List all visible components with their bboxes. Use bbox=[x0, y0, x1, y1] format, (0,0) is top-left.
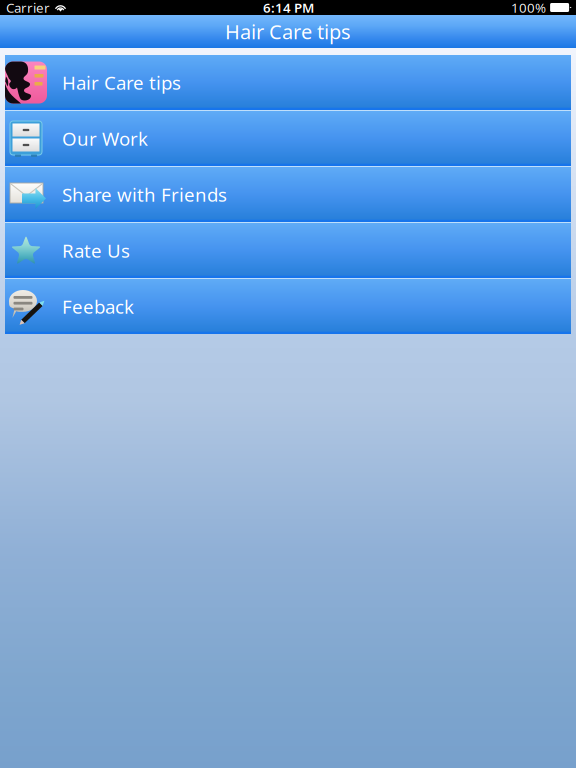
staticText: Share with Friends bbox=[62, 182, 227, 207]
button[interactable]: Our Work bbox=[5, 111, 571, 166]
staticText: Feeback bbox=[62, 294, 134, 319]
button[interactable]: Rate Us bbox=[5, 223, 571, 278]
staticText: Carrier bbox=[6, 0, 50, 16]
button[interactable]: Hair Care tips bbox=[5, 55, 571, 110]
staticText: Hair Care tips bbox=[225, 18, 351, 45]
staticText: Rate Us bbox=[62, 238, 130, 263]
button[interactable]: Share with Friends bbox=[5, 167, 571, 222]
staticText: 6:14 PM bbox=[263, 0, 314, 16]
button[interactable]: Feeback bbox=[5, 279, 571, 334]
staticText: Hair Care tips bbox=[62, 70, 181, 95]
staticText: Our Work bbox=[62, 126, 148, 151]
staticText: 100% bbox=[511, 0, 546, 16]
